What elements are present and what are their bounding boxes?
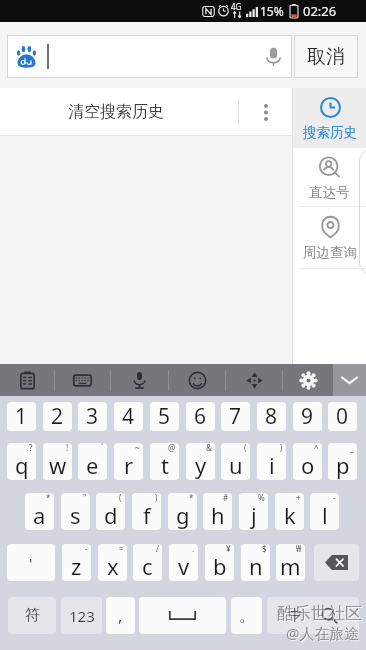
button[interactable]: Settings [283,364,333,396]
staticText: 1 [15,402,28,431]
staticText: i [269,450,275,480]
staticText: n [249,551,263,581]
button[interactable]: _ [328,443,357,480]
button[interactable]: Voice search [256,40,290,74]
staticText: ( [119,493,122,503]
button[interactable]: * [168,493,197,530]
button[interactable]: Clipboard [0,364,54,396]
staticText: f [143,500,151,530]
button[interactable]: 2 [43,402,72,431]
staticText: e [86,450,99,480]
button[interactable]: Keyboard layout [55,364,110,396]
staticText: 符 [25,606,40,625]
staticText: u [229,450,243,480]
button[interactable]: . [169,544,198,581]
button[interactable]: 符 [8,597,56,634]
button[interactable]: 123 [61,597,102,634]
button[interactable]: 周边查询 [293,207,366,269]
button[interactable]: More options [245,88,287,136]
button[interactable]: % [239,493,268,530]
staticText: l [322,500,328,530]
staticText: $ [262,544,267,554]
staticText: ) [155,493,158,503]
staticText: 清空搜索历史 [68,102,164,122]
button[interactable]: + [275,493,304,530]
button[interactable]: 7 [221,402,250,431]
button[interactable]: 搜索历史 [293,88,366,148]
staticText: 2 [51,402,64,431]
button[interactable]: 9 [293,402,322,431]
button[interactable]: Backspace [314,544,359,581]
button[interactable]: 6 [186,402,215,431]
button[interactable]: # [203,493,232,530]
staticText: ¥ [226,544,231,554]
staticText: , [118,605,123,627]
button[interactable]: 直达号 [293,148,366,207]
staticText: 7 [229,402,242,431]
button[interactable]: / [133,544,162,581]
staticText: 123 [69,606,95,626]
button[interactable]: 取消 [294,35,358,78]
button[interactable]: $ [241,544,270,581]
staticText: 15% [260,3,284,19]
staticText: 4G [231,1,242,12]
staticText: b [213,551,227,581]
button[interactable]: - [62,544,91,581]
button[interactable]: 3 [78,402,107,431]
staticText: 。 [239,606,255,626]
button[interactable]: ₩ [276,544,305,581]
button[interactable]: = [98,544,127,581]
button[interactable]: 4 [114,402,143,431]
button[interactable]: - [310,493,339,530]
button[interactable]: ! [43,443,72,480]
button[interactable]: 8 [257,402,286,431]
staticText: / [156,544,159,554]
staticText: - [85,544,88,554]
staticText: a [33,500,46,530]
button[interactable]: Hide keyboard [333,364,366,396]
button[interactable]: ~ [114,443,143,480]
staticText: @人在旅途 [287,624,361,644]
button[interactable]: @ [150,443,179,480]
staticText: 直达号 [309,184,350,201]
staticText: y [195,450,207,480]
staticText: 酷乐世社区 [278,604,363,625]
staticText: d [104,500,118,530]
button[interactable]: Emoji [169,364,225,396]
button[interactable]: 0 [328,402,357,431]
button[interactable]: Search [267,597,359,634]
button[interactable]: ) [257,443,286,480]
staticText: g [176,500,190,530]
button[interactable]: Voice search [7,35,292,78]
button[interactable]: 清空搜索历史 [0,88,292,136]
staticText: ( [244,443,247,453]
staticText: 中 [288,606,303,625]
staticText: q [15,450,29,480]
button[interactable]: Move cursor [226,364,282,396]
button[interactable]: Space [139,597,226,634]
staticText: 0 [336,402,349,431]
button[interactable]: ( [96,493,125,530]
staticText: ! [66,443,69,453]
button[interactable]: 。 [231,597,262,634]
button[interactable]: ' [7,544,55,581]
button[interactable]: ) [132,493,161,530]
button[interactable]: ^ [293,443,322,480]
button[interactable]: 1 [7,402,36,431]
button[interactable]: ( [221,443,250,480]
button[interactable]: , [106,597,135,634]
button[interactable]: ¥ [205,544,234,581]
staticText: 9 [301,402,314,431]
button[interactable]: " [61,493,90,530]
button[interactable]: Voice input [111,364,168,396]
staticText: + [296,493,301,503]
staticText: * [46,493,51,503]
staticText: k [284,500,296,530]
button[interactable]: 5 [150,402,179,431]
button[interactable]: ? [7,443,36,480]
button[interactable]: ` [78,443,107,480]
button[interactable]: & [186,443,215,480]
staticText: 取消 [307,45,345,69]
button[interactable]: * [25,493,54,530]
staticText: " [83,493,87,503]
